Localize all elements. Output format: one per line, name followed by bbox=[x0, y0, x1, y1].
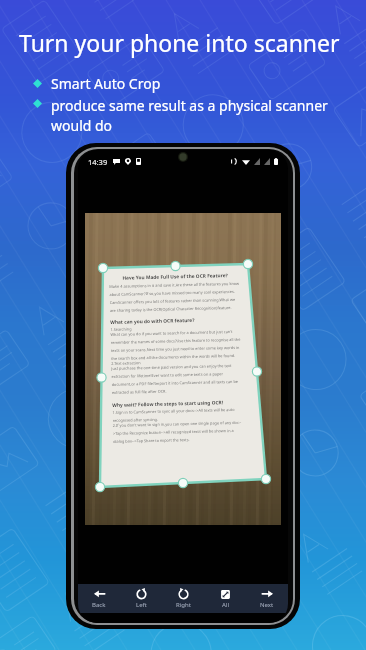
button[interactable]: Left bbox=[120, 584, 162, 613]
staticText: What can you do if you want to search fo… bbox=[110, 329, 243, 361]
staticText: All bbox=[222, 601, 229, 609]
staticText: Have You Made Full Use of the OCR Featur… bbox=[109, 272, 241, 282]
staticText: Turn your phone into scanner bbox=[19, 27, 340, 58]
button[interactable]: Back bbox=[78, 584, 120, 613]
button[interactable]: Right bbox=[162, 584, 204, 613]
staticText: 1.Sign in to CamScanner to sync all your… bbox=[112, 407, 245, 423]
staticText: 1.Searching bbox=[110, 326, 132, 332]
staticText: 2.If you don't want to sign in,you can o… bbox=[113, 420, 245, 444]
staticText: Make 4 assumptions in it and save it.Are… bbox=[109, 281, 242, 313]
staticText: Next bbox=[260, 601, 274, 609]
staticText: Right bbox=[176, 601, 191, 609]
staticText: Just purchase the one-time paid version … bbox=[111, 363, 244, 395]
button[interactable]: All bbox=[204, 584, 246, 613]
button[interactable]: Next bbox=[246, 584, 288, 613]
staticText: 14:39 bbox=[88, 157, 108, 167]
staticText: 2.Text extraction bbox=[111, 360, 141, 366]
staticText: Smart Auto Crop bbox=[51, 74, 161, 93]
staticText: Why wait? Follow the steps to start usin… bbox=[112, 399, 223, 409]
staticText: Back bbox=[92, 601, 106, 609]
staticText: Left bbox=[136, 601, 147, 609]
staticText: produce same result as a physical scanne… bbox=[51, 96, 339, 135]
staticText: What can you do with OCR feature? bbox=[110, 317, 195, 326]
